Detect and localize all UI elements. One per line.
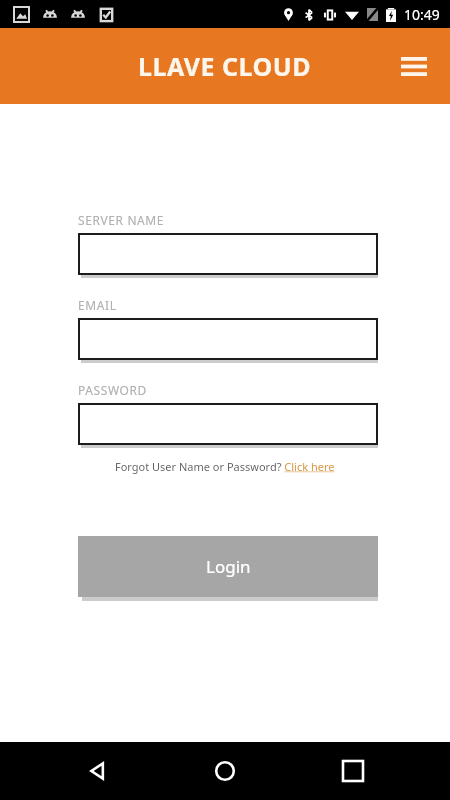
staticText: LLAVE CLOUD — [138, 49, 312, 83]
staticText: EMAIL — [78, 297, 117, 313]
button[interactable]: Back — [68, 742, 128, 800]
button[interactable] — [78, 318, 378, 360]
button[interactable]: Forgot User Name or Password? Click here — [115, 459, 335, 474]
staticText: SERVER NAME — [78, 212, 165, 228]
button[interactable]: Login — [78, 536, 378, 597]
button[interactable] — [78, 233, 378, 275]
button[interactable]: Menu — [392, 44, 436, 88]
staticText: Login — [206, 555, 251, 578]
staticText: PASSWORD — [78, 382, 147, 398]
button[interactable]: Recents — [323, 742, 383, 800]
staticText: Forgot User Name or Password? Click here — [115, 459, 335, 474]
button[interactable]: Home — [195, 742, 255, 800]
button[interactable] — [78, 403, 378, 445]
staticText: 10:49 — [404, 5, 440, 24]
